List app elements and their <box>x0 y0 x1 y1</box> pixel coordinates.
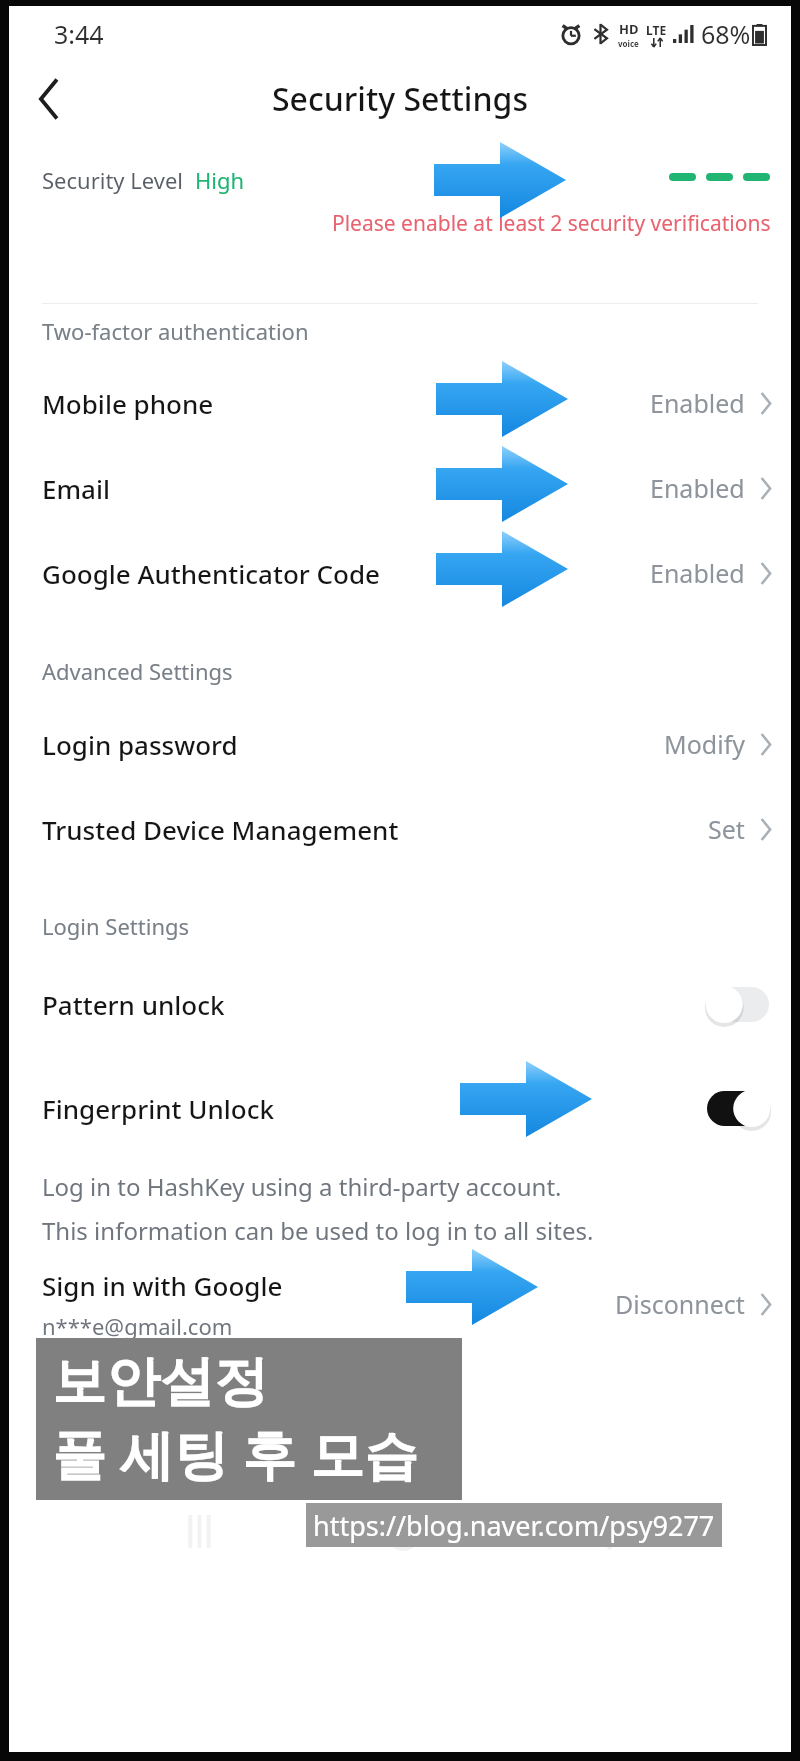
button[interactable]: Email <box>9 453 791 523</box>
button[interactable]: Pattern unlock <box>9 966 791 1042</box>
staticText: Login Settings <box>42 911 190 941</box>
staticText: Sign in with Google <box>42 1268 283 1303</box>
staticText: Google Authenticator Code <box>42 556 380 591</box>
staticText: High <box>195 165 245 195</box>
staticText: https://blog.naver.com/psy9277 <box>313 1507 715 1544</box>
staticText: Email <box>42 471 111 506</box>
staticText: This information can be used to log in t… <box>42 1214 594 1247</box>
button[interactable]: Trusted Device Management <box>9 794 791 864</box>
staticText: LTE <box>646 22 667 38</box>
staticText: Security Level <box>42 165 184 195</box>
staticText: Modify <box>664 727 745 761</box>
staticText: n***e@gmail.com <box>42 1311 233 1341</box>
staticText: Two-factor authentication <box>42 316 309 346</box>
staticText: Trusted Device Management <box>42 812 399 847</box>
button[interactable]: Pattern unlock off <box>707 987 769 1022</box>
staticText: Login password <box>42 727 238 762</box>
staticText: Mobile phone <box>42 386 214 421</box>
button[interactable]: Login password <box>9 709 791 779</box>
staticText: voice <box>618 38 639 49</box>
staticText: 68% <box>701 17 751 51</box>
button[interactable]: Back <box>19 70 77 128</box>
staticText: Advanced Settings <box>42 656 233 686</box>
button[interactable]: Fingerprint Unlock on <box>707 1091 769 1126</box>
staticText: Log in to HashKey using a third-party ac… <box>42 1170 562 1203</box>
staticText: Security Settings <box>272 77 528 121</box>
staticText: HD <box>619 20 639 38</box>
button[interactable]: Sign in with Google <box>9 1261 791 1347</box>
staticText: Enabled <box>650 471 745 505</box>
staticText: Enabled <box>650 386 745 420</box>
button[interactable]: Mobile phone <box>9 368 791 438</box>
button[interactable]: Fingerprint Unlock <box>9 1070 791 1146</box>
staticText: 풀 세팅 후 모습 <box>52 1416 419 1490</box>
staticText: Set <box>708 812 745 846</box>
button[interactable]: Google Authenticator Code <box>9 538 791 608</box>
staticText: Disconnect <box>615 1287 745 1321</box>
staticText: Pattern unlock <box>42 987 225 1022</box>
staticText: 3:44 <box>54 17 104 51</box>
staticText: Fingerprint Unlock <box>42 1091 274 1126</box>
staticText: Enabled <box>650 556 745 590</box>
staticText: Please enable at least 2 security verifi… <box>332 209 771 238</box>
staticText: 보안설정 <box>52 1348 268 1416</box>
